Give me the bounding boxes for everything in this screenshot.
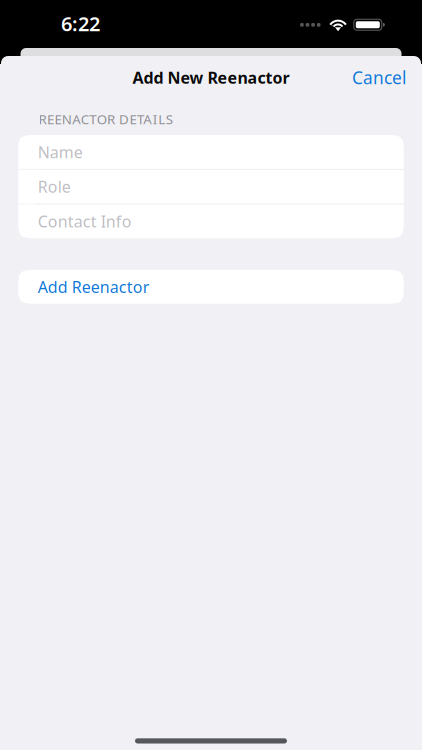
- staticText: REENACTOR DETAILS: [38, 110, 173, 128]
- staticText: Contact Info: [38, 211, 132, 232]
- staticText: 6:22: [61, 10, 100, 37]
- button[interactable]: Add Reenactor: [0, 270, 422, 304]
- staticText: Add Reenactor: [38, 276, 150, 297]
- staticText: Cancel: [352, 66, 406, 89]
- staticText: Role: [38, 176, 71, 197]
- staticText: Add New Reenactor: [132, 67, 289, 88]
- button[interactable]: Name: [18, 135, 404, 169]
- button[interactable]: Contact Info: [18, 204, 404, 238]
- staticText: Name: [38, 141, 83, 162]
- button[interactable]: Cancel: [352, 56, 422, 99]
- button[interactable]: Role: [18, 170, 404, 204]
